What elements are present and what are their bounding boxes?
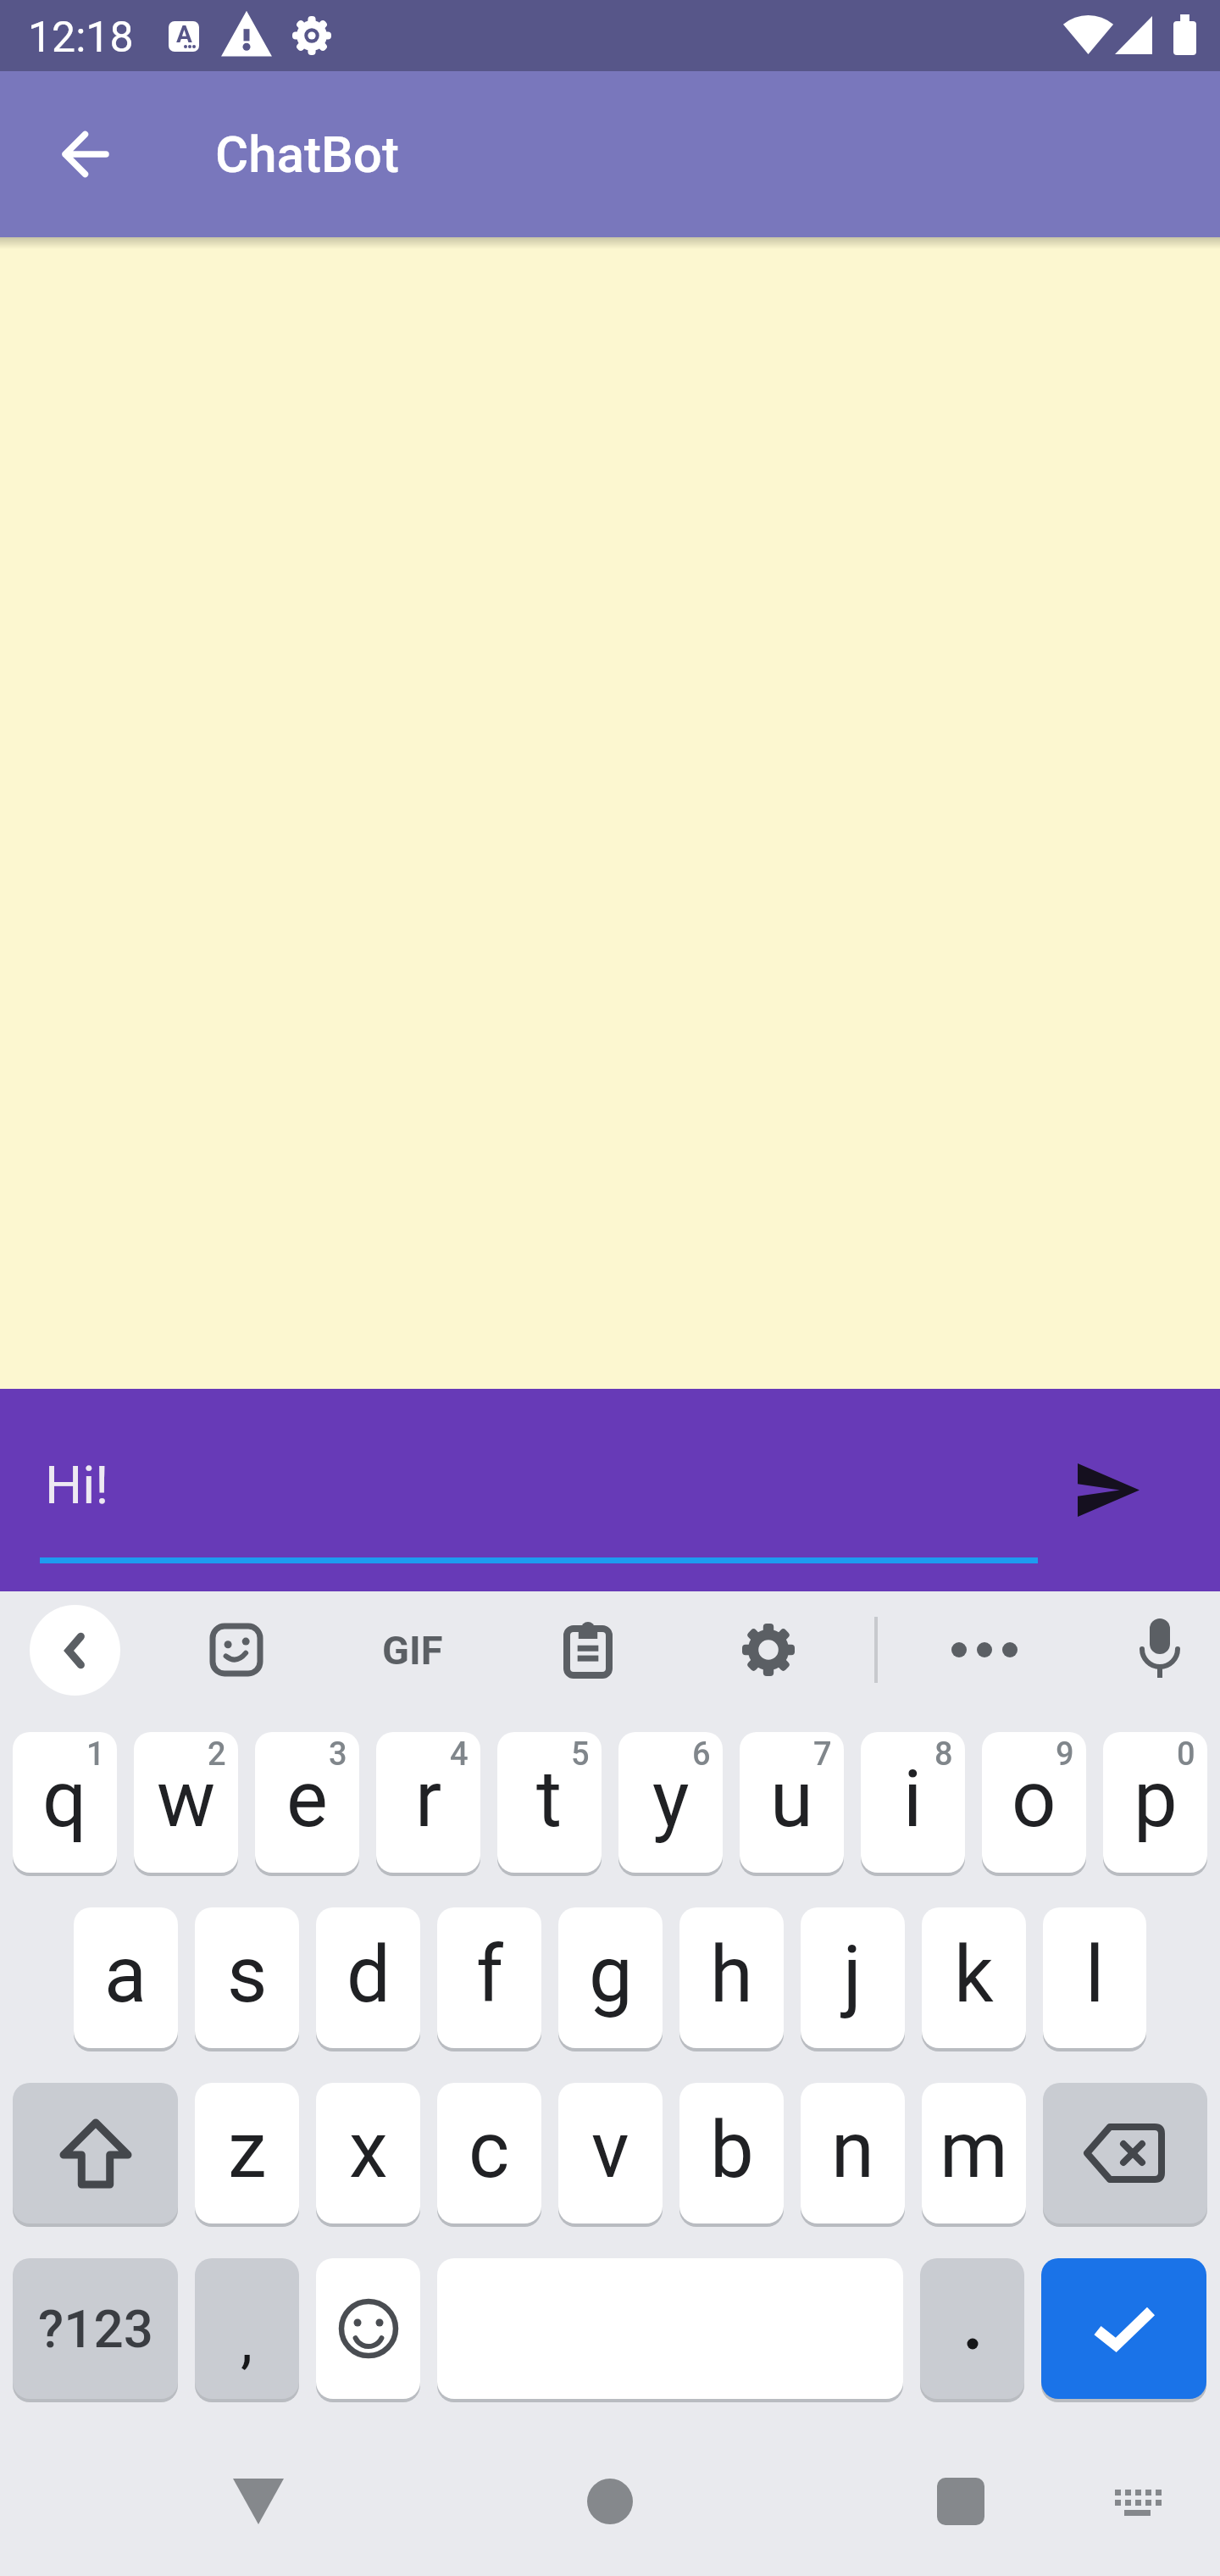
staticText: 4 xyxy=(450,1735,469,1774)
staticText: 0 xyxy=(1177,1735,1195,1774)
staticText: k xyxy=(954,1929,994,2021)
button[interactable]: r xyxy=(376,1732,480,1873)
staticText: s xyxy=(227,1929,268,2021)
staticText: m xyxy=(940,2105,1008,2196)
button[interactable] xyxy=(920,2258,1024,2399)
staticText: g xyxy=(589,1929,633,2021)
button[interactable] xyxy=(722,1591,815,1708)
staticText: f xyxy=(476,1929,503,2021)
button[interactable] xyxy=(587,2479,633,2524)
staticText: 12:18 xyxy=(28,13,134,63)
staticText: o xyxy=(1012,1754,1056,1846)
staticText: 5 xyxy=(571,1735,590,1774)
button[interactable]: v xyxy=(558,2083,663,2223)
staticText: GIF xyxy=(382,1627,443,1674)
button[interactable]: c xyxy=(437,2083,541,2223)
staticText: 9 xyxy=(1056,1735,1074,1774)
button[interactable]: l xyxy=(1043,1907,1146,2048)
staticText: i xyxy=(903,1754,923,1846)
staticText: ?123 xyxy=(38,2298,153,2360)
staticText: p xyxy=(1134,1754,1178,1846)
button[interactable] xyxy=(1043,2083,1207,2223)
button[interactable] xyxy=(233,2479,284,2524)
staticText: w xyxy=(157,1754,216,1846)
staticText: 6 xyxy=(692,1735,711,1774)
staticText: 7 xyxy=(813,1735,832,1774)
staticText: e xyxy=(286,1754,328,1846)
button[interactable]: i xyxy=(861,1732,965,1873)
button[interactable]: s xyxy=(195,1907,299,2048)
staticText: A xyxy=(176,21,192,48)
button[interactable]: k xyxy=(922,1907,1026,2048)
staticText: , xyxy=(241,2305,253,2376)
staticText: a xyxy=(104,1929,147,2021)
button[interactable] xyxy=(30,1605,120,1696)
staticText: Hi! xyxy=(45,1454,109,1516)
staticText: z xyxy=(228,2105,267,2196)
button[interactable] xyxy=(190,1591,283,1708)
staticText: b xyxy=(710,2105,754,2196)
button[interactable] xyxy=(316,2258,420,2399)
button[interactable] xyxy=(64,133,108,175)
button[interactable]: j xyxy=(801,1907,905,2048)
staticText: h xyxy=(710,1929,753,2021)
button[interactable] xyxy=(1041,2258,1206,2399)
button[interactable]: f xyxy=(437,1907,541,2048)
staticText: c xyxy=(469,2105,510,2196)
button[interactable] xyxy=(1113,1591,1206,1708)
button[interactable]: GIF xyxy=(366,1591,459,1708)
staticText: 8 xyxy=(934,1735,953,1774)
button[interactable] xyxy=(1115,2490,1162,2516)
button[interactable] xyxy=(13,2083,178,2223)
staticText: q xyxy=(42,1754,87,1846)
button[interactable]: b xyxy=(679,2083,784,2223)
button[interactable]: z xyxy=(195,2083,299,2223)
staticText: t xyxy=(536,1754,563,1846)
button[interactable]: g xyxy=(558,1907,663,2048)
button[interactable]: n xyxy=(801,2083,905,2223)
button[interactable]: m xyxy=(922,2083,1026,2223)
button[interactable] xyxy=(1078,1463,1140,1517)
staticText: j xyxy=(843,1929,862,2021)
button[interactable] xyxy=(938,1591,1031,1708)
button[interactable]: d xyxy=(316,1907,420,2048)
button[interactable]: u xyxy=(740,1732,844,1873)
button[interactable] xyxy=(937,2478,984,2525)
button[interactable]: a xyxy=(74,1907,178,2048)
button[interactable]: ?123 xyxy=(13,2258,178,2399)
staticText: n xyxy=(831,2105,874,2196)
staticText: d xyxy=(347,1929,391,2021)
button[interactable]: w xyxy=(134,1732,238,1873)
staticText: 3 xyxy=(329,1735,347,1774)
staticText: x xyxy=(349,2105,388,2196)
staticText: y xyxy=(652,1754,690,1846)
button[interactable]: x xyxy=(316,2083,420,2223)
staticText: l xyxy=(1085,1929,1105,2021)
button[interactable]: e xyxy=(255,1732,359,1873)
staticText: u xyxy=(770,1754,813,1846)
button[interactable]: h xyxy=(679,1907,784,2048)
button[interactable]: t xyxy=(497,1732,602,1873)
button[interactable]: q xyxy=(13,1732,117,1873)
staticText: r xyxy=(415,1754,442,1846)
button[interactable]: , xyxy=(195,2258,299,2399)
staticText: v xyxy=(591,2105,629,2196)
staticText: 2 xyxy=(208,1735,226,1774)
button[interactable]: y xyxy=(618,1732,723,1873)
button[interactable] xyxy=(541,1591,635,1708)
staticText: 1 xyxy=(86,1735,105,1774)
button[interactable]: o xyxy=(982,1732,1086,1873)
staticText: ChatBot xyxy=(215,125,399,184)
button[interactable] xyxy=(437,2258,903,2399)
button[interactable]: p xyxy=(1103,1732,1207,1873)
